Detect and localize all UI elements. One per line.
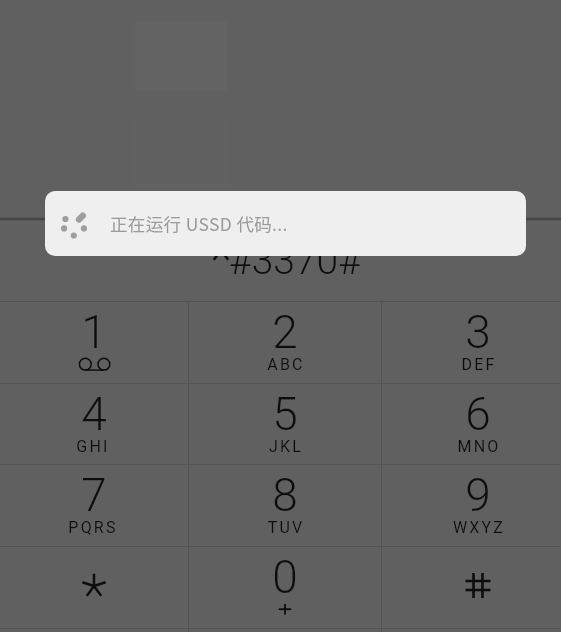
button[interactable]: 0 [189, 547, 381, 628]
staticText: 7 [34, 468, 154, 522]
button[interactable]: 8 [189, 465, 381, 546]
staticText: 0 [225, 550, 345, 604]
button[interactable]: * [0, 547, 188, 628]
button[interactable]: Loading [45, 191, 526, 256]
button[interactable]: # [382, 547, 561, 628]
button[interactable]: 4 [0, 384, 188, 464]
staticText: 9 [418, 468, 538, 522]
staticText: 5 [225, 387, 345, 441]
button[interactable]: 2 [189, 302, 381, 383]
button[interactable]: 5 [189, 384, 381, 464]
staticText: 4 [34, 387, 154, 441]
button[interactable]: 6 [382, 384, 561, 464]
staticText: 3 [418, 305, 538, 359]
staticText: 8 [225, 468, 345, 522]
staticText: 6 [418, 387, 538, 441]
staticText: TUV [226, 518, 346, 537]
staticText: 正在运行 USSD 代码... [110, 211, 288, 236]
staticText: MNO [419, 437, 539, 456]
button[interactable]: 3 [382, 302, 561, 383]
other: Loading [59, 210, 89, 240]
staticText: 2 [225, 305, 345, 359]
button[interactable]: 1 [0, 302, 188, 383]
staticText: WXYZ [419, 518, 539, 537]
staticText: #3370# [229, 238, 361, 284]
button[interactable]: 9 [382, 465, 561, 546]
staticText: PQRS [33, 518, 153, 537]
staticText: 1 [34, 305, 154, 359]
button[interactable]: 7 [0, 465, 188, 546]
staticText: DEF [419, 355, 539, 374]
staticText: GHI [33, 437, 153, 456]
staticText: JKL [226, 437, 346, 456]
staticText: ABC [226, 355, 346, 374]
